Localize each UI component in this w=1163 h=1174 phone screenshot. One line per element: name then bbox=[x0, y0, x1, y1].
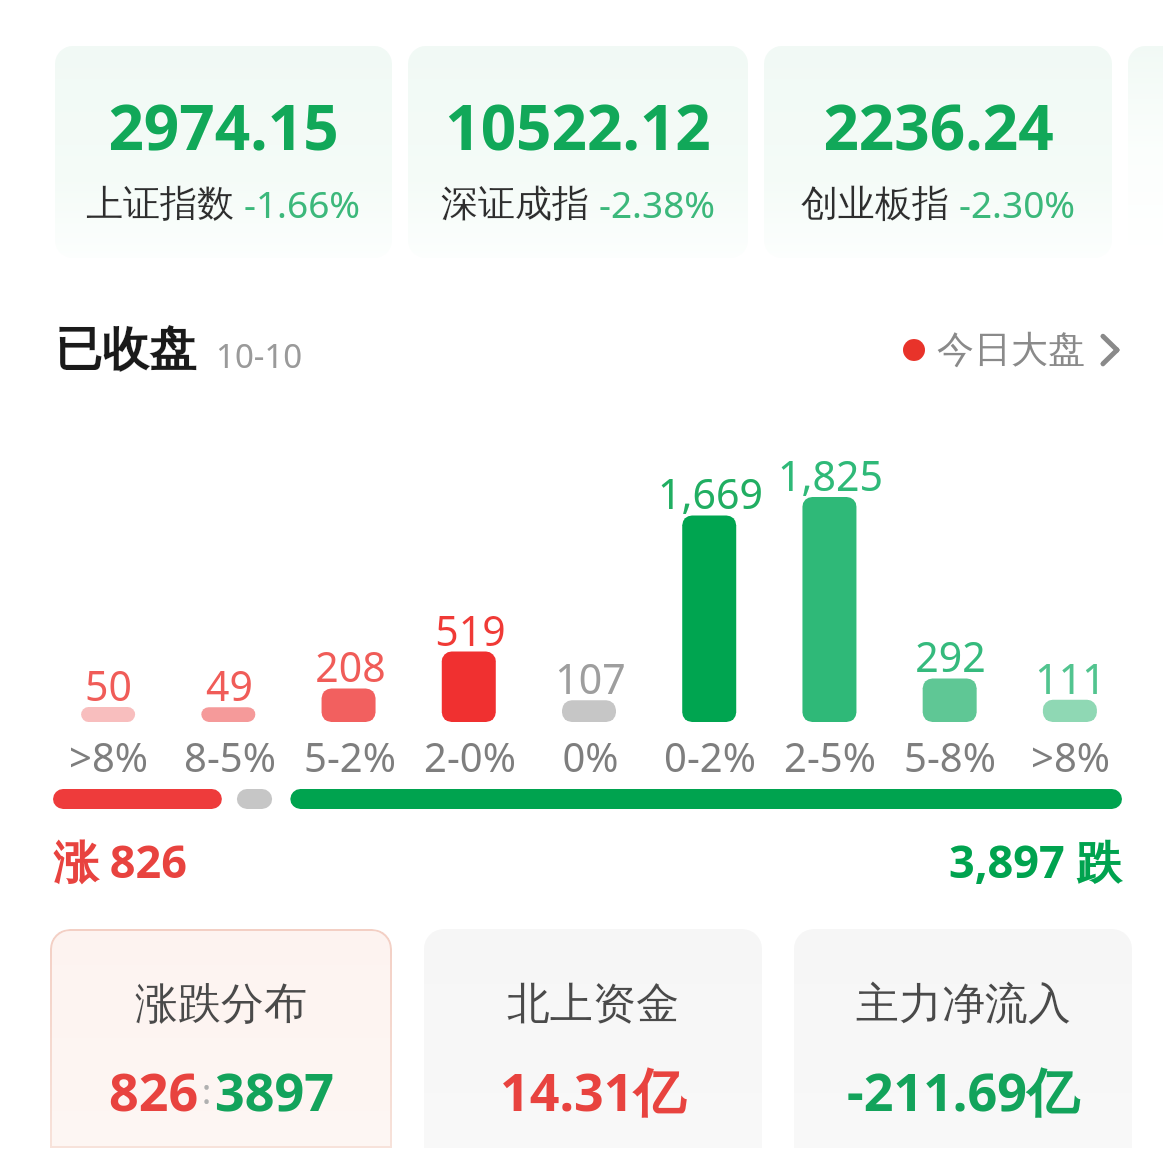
staticText: 上证指数 bbox=[86, 180, 234, 227]
staticText: 1,669 bbox=[658, 465, 763, 521]
staticText: 50 bbox=[85, 657, 132, 713]
button[interactable]: 主力净流入 bbox=[794, 929, 1132, 1148]
staticText: 14.31亿 bbox=[500, 1055, 686, 1126]
staticText: 3,897 跌 bbox=[949, 830, 1122, 891]
staticText: 111 bbox=[1035, 650, 1106, 706]
staticText: -2.30% bbox=[959, 178, 1076, 228]
staticText: >8% bbox=[69, 729, 148, 783]
staticText: -211.69亿 bbox=[847, 1055, 1079, 1126]
staticText: 49 bbox=[206, 657, 253, 713]
staticText: 519 bbox=[435, 602, 506, 658]
staticText: 10-10 bbox=[216, 333, 303, 378]
button[interactable]: 涨跌分布 bbox=[50, 929, 392, 1148]
staticText: 8-5% bbox=[184, 729, 276, 783]
staticText: 292 bbox=[915, 628, 986, 684]
staticText: : bbox=[202, 1068, 212, 1114]
staticText: 涨 826 bbox=[53, 830, 187, 891]
button[interactable]: 2236.24 bbox=[764, 46, 1112, 258]
staticText: 5-2% bbox=[304, 729, 396, 783]
staticText: 208 bbox=[315, 638, 386, 694]
staticText: -1.66% bbox=[244, 178, 361, 228]
staticText: 2236.24 bbox=[823, 84, 1054, 168]
staticText: 3897 bbox=[215, 1055, 334, 1126]
staticText: 1,825 bbox=[778, 447, 883, 503]
button[interactable]: 10522.12 bbox=[408, 46, 748, 258]
staticText: 主力净流入 bbox=[856, 977, 1071, 1031]
staticText: 2-5% bbox=[784, 729, 876, 783]
staticText: 2974.15 bbox=[108, 84, 339, 168]
staticText: 创业板指 bbox=[801, 180, 949, 227]
staticText: 0% bbox=[562, 729, 619, 783]
button[interactable]: 北上资金 bbox=[424, 929, 762, 1148]
button[interactable]: 2974.15 bbox=[55, 46, 392, 258]
staticText: 今日大盘 bbox=[937, 326, 1085, 373]
staticText: 深证成指 bbox=[441, 180, 589, 227]
staticText: 0-2% bbox=[664, 729, 756, 783]
staticText: 107 bbox=[555, 650, 626, 706]
button[interactable]: 今日大盘 bbox=[903, 326, 1121, 373]
staticText: 北上资金 bbox=[507, 977, 679, 1031]
button[interactable] bbox=[1128, 46, 1163, 258]
staticText: 2-0% bbox=[424, 729, 516, 783]
staticText: 涨跌分布 bbox=[135, 977, 307, 1031]
other: 今日大盘详情 bbox=[1099, 332, 1121, 368]
staticText: 5-8% bbox=[904, 729, 996, 783]
staticText: >8% bbox=[1031, 729, 1110, 783]
staticText: 已收盘 bbox=[55, 320, 196, 379]
staticText: 10522.12 bbox=[445, 84, 711, 168]
staticText: -2.38% bbox=[599, 178, 716, 228]
staticText: 826 bbox=[109, 1055, 199, 1126]
